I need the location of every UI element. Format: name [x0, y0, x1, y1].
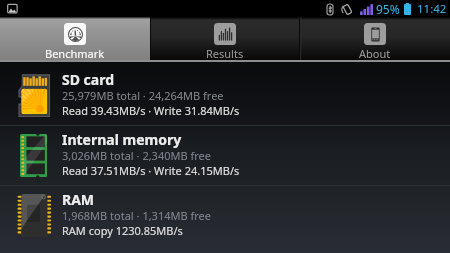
button[interactable]: RAM: [0, 186, 450, 245]
staticText: RAM copy 1230.85MB/s: [62, 223, 183, 238]
button[interactable]: Internal memory: [0, 126, 450, 185]
staticText: RAM: [62, 190, 95, 209]
staticText: About: [359, 46, 391, 60]
button[interactable]: Results: [150, 17, 300, 60]
staticText: Read 37.51MB/s · Write 24.15MB/s: [62, 163, 240, 178]
staticText: SD card: [62, 70, 115, 89]
staticText: Benchmark: [45, 46, 105, 60]
staticText: Results: [206, 46, 244, 60]
staticText: 1,968MB total · 1,314MB free: [62, 208, 211, 223]
staticText: 3,026MB total · 2,340MB free: [62, 148, 211, 163]
staticText: Read 39.43MB/s · Write 31.84MB/s: [62, 103, 240, 118]
staticText: 95%: [376, 1, 400, 17]
button[interactable]: SD card: [0, 66, 450, 125]
staticText: Internal memory: [62, 130, 182, 149]
staticText: 25,979MB total · 24,264MB free: [62, 88, 224, 103]
other: Screenshot captured: [7, 3, 18, 14]
button[interactable]: About: [300, 17, 450, 60]
staticText: 11:42: [417, 1, 447, 17]
button[interactable]: Benchmark: [0, 17, 150, 60]
